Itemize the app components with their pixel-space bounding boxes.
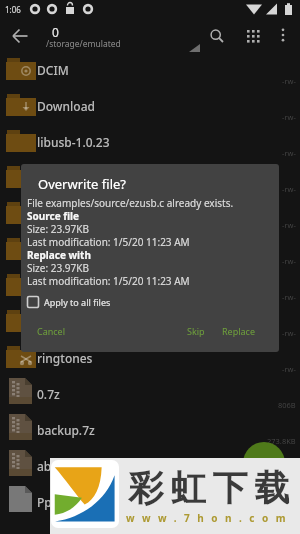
staticText: Last modification: 1/5/20 11:23 AM bbox=[27, 274, 190, 288]
staticText: File examples/source/ezusb.c already exi… bbox=[27, 196, 234, 210]
staticText: 0 bbox=[52, 24, 59, 40]
button[interactable]: Music bbox=[0, 198, 300, 234]
staticText: /storage/emulated bbox=[46, 38, 121, 50]
staticText: -rw- bbox=[282, 76, 296, 86]
staticText: Music bbox=[37, 206, 252, 222]
staticText: Ppp.txt bbox=[37, 494, 252, 510]
staticText: Source file bbox=[27, 209, 80, 223]
staticText: -rw- bbox=[282, 148, 296, 158]
staticText: Podcasts bbox=[37, 314, 252, 330]
staticText: 0.7z bbox=[37, 386, 252, 402]
staticText: Size: 23.97KB bbox=[27, 261, 89, 275]
staticText: 彩虹下载 bbox=[125, 466, 293, 510]
staticText: -rw- bbox=[282, 328, 296, 338]
button[interactable]: Back bbox=[2, 18, 38, 54]
button[interactable]: Podcasts bbox=[0, 306, 300, 342]
staticText: -rw- bbox=[282, 220, 296, 230]
button[interactable]: Notifications bbox=[0, 234, 300, 270]
button[interactable]: Skip bbox=[187, 325, 205, 337]
staticText: Replace with bbox=[27, 248, 91, 262]
staticText: Size: 23.97KB bbox=[27, 222, 89, 236]
button[interactable]: Add bbox=[243, 442, 285, 484]
button[interactable]: DCIM bbox=[0, 54, 300, 90]
staticText: Cancel bbox=[37, 325, 66, 337]
button[interactable]: More options bbox=[266, 18, 300, 52]
button[interactable]: Ppp.txt bbox=[0, 486, 300, 522]
staticText: -rw- bbox=[282, 256, 296, 266]
staticText: abc.7z bbox=[37, 458, 252, 474]
button[interactable]: 0.7z bbox=[0, 378, 300, 414]
staticText: Pictures bbox=[37, 278, 252, 294]
staticText: 2.5KB bbox=[275, 472, 296, 482]
staticText: -rw- bbox=[282, 292, 296, 302]
staticText: 1:06 bbox=[5, 4, 21, 15]
staticText: DCIM bbox=[37, 62, 252, 78]
staticText: Download bbox=[37, 98, 252, 114]
button[interactable]: backup.7z bbox=[0, 414, 300, 450]
button[interactable]: Pictures bbox=[0, 270, 300, 306]
button[interactable]: abc.7z bbox=[0, 450, 300, 486]
staticText: Movies bbox=[37, 170, 252, 186]
button[interactable]: Cancel bbox=[37, 325, 66, 337]
staticText: 273.8KB bbox=[267, 436, 296, 446]
button[interactable]: Apply to all files bbox=[25, 292, 111, 312]
staticText: Last modification: 1/5/20 11:23 AM bbox=[27, 235, 190, 249]
staticText: 806B bbox=[278, 400, 296, 410]
staticText: -rw- bbox=[282, 364, 296, 374]
staticText: -rw- bbox=[282, 112, 296, 122]
button[interactable]: libusb-1.0.23 bbox=[0, 126, 300, 162]
button[interactable]: Replace bbox=[222, 325, 255, 337]
button[interactable]: Movies bbox=[0, 162, 300, 198]
button[interactable]: ringtones bbox=[0, 342, 300, 378]
staticText: Notifications bbox=[37, 242, 252, 258]
staticText: www.7hon.com bbox=[126, 511, 294, 525]
staticText: Overwrite file? bbox=[38, 175, 126, 193]
staticText: ringtones bbox=[37, 350, 252, 366]
staticText: libusb-1.0.23 bbox=[37, 134, 252, 150]
staticText: Replace bbox=[222, 325, 255, 337]
button[interactable]: Grid view bbox=[235, 18, 271, 54]
staticText: Apply to all files bbox=[44, 296, 111, 308]
staticText: -rw- bbox=[282, 184, 296, 194]
staticText: 4KB bbox=[282, 508, 296, 518]
button[interactable]: Search bbox=[199, 18, 235, 54]
staticText: backup.7z bbox=[37, 422, 252, 438]
button[interactable]: Download bbox=[0, 90, 300, 126]
staticText: Skip bbox=[187, 325, 205, 337]
